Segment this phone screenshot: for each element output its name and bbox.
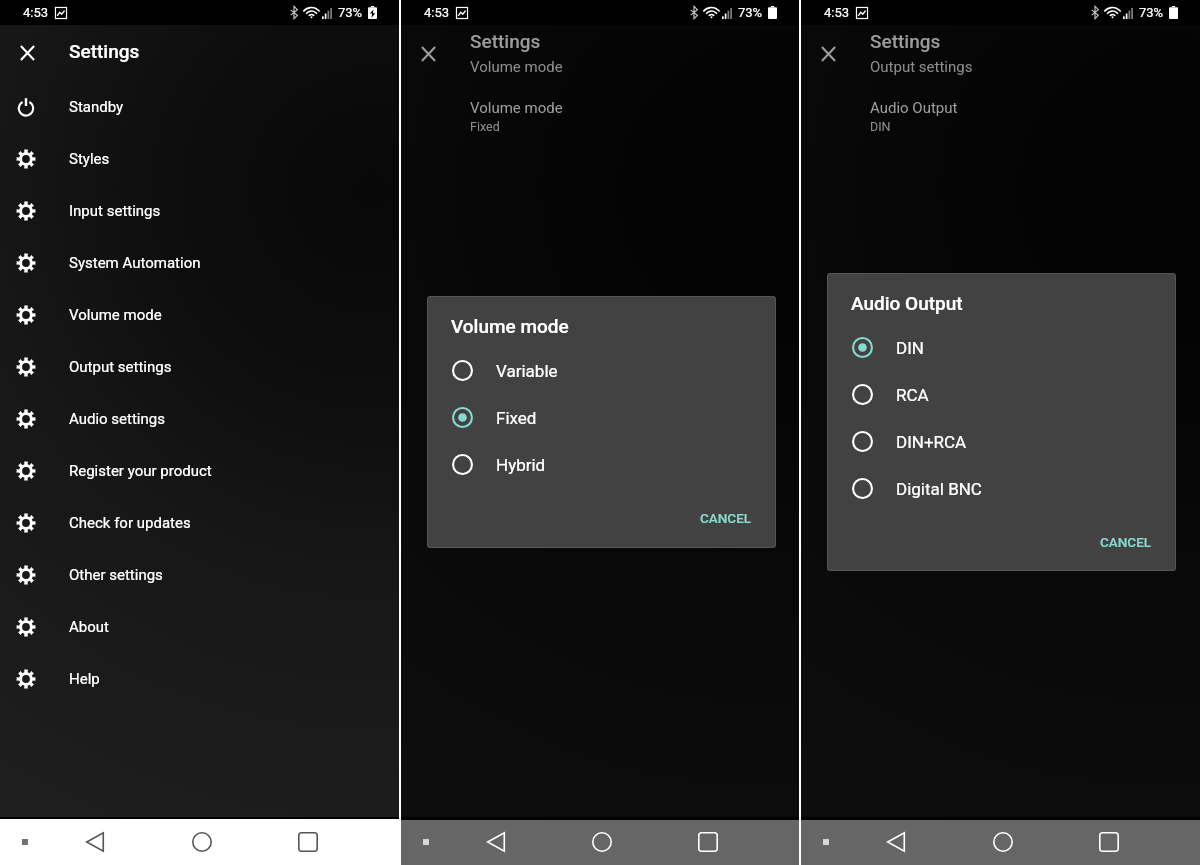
button[interactable]: Other settings bbox=[0, 549, 399, 601]
button[interactable]: Check for updates bbox=[0, 497, 399, 549]
staticText: Fixed bbox=[470, 119, 500, 134]
staticText: Output settings bbox=[69, 358, 172, 376]
button[interactable]: Variable bbox=[427, 347, 776, 394]
button[interactable]: DIN bbox=[827, 324, 1176, 371]
staticText: Settings bbox=[69, 40, 140, 62]
staticText: Variable bbox=[496, 361, 558, 381]
staticText: Digital BNC bbox=[896, 479, 982, 499]
button[interactable]: Home bbox=[578, 819, 626, 864]
button[interactable]: Back bbox=[472, 819, 520, 864]
staticText: Fixed bbox=[496, 408, 537, 428]
staticText: Audio Output bbox=[851, 292, 963, 314]
staticText: Output settings bbox=[870, 58, 973, 76]
button[interactable]: Standby bbox=[0, 81, 399, 133]
staticText: Other settings bbox=[69, 566, 163, 584]
button[interactable]: Recent apps bbox=[284, 819, 332, 865]
staticText: 73% bbox=[1139, 5, 1164, 20]
staticText: 73% bbox=[338, 5, 363, 20]
button[interactable]: Hybrid bbox=[427, 441, 776, 488]
button[interactable]: CANCEL bbox=[690, 500, 762, 536]
staticText: 73% bbox=[738, 5, 763, 20]
button[interactable]: Fixed bbox=[427, 394, 776, 441]
staticText: System Automation bbox=[69, 254, 201, 272]
button[interactable]: Audio settings bbox=[0, 393, 399, 445]
staticText: Standby bbox=[69, 98, 124, 116]
staticText: 4:53 bbox=[424, 5, 450, 20]
staticText: Help bbox=[69, 670, 100, 688]
staticText: Input settings bbox=[69, 202, 161, 220]
staticText: Check for updates bbox=[69, 514, 191, 532]
staticText: Styles bbox=[69, 150, 110, 168]
button[interactable]: Input settings bbox=[0, 185, 399, 237]
staticText: Volume mode bbox=[69, 306, 162, 324]
staticText: Audio settings bbox=[69, 410, 165, 428]
button[interactable]: Recent apps bbox=[1085, 819, 1133, 864]
staticText: Audio Output bbox=[870, 99, 958, 117]
button[interactable]: Close bbox=[806, 32, 850, 76]
staticText: Settings bbox=[870, 30, 941, 52]
button[interactable]: Audio Output bbox=[801, 99, 1200, 143]
button[interactable]: Help bbox=[0, 653, 399, 705]
button[interactable]: Back bbox=[71, 819, 119, 865]
button[interactable]: Digital BNC bbox=[827, 465, 1176, 512]
staticText: Settings bbox=[470, 30, 541, 52]
button[interactable]: Register your product bbox=[0, 445, 399, 497]
button[interactable]: Close bbox=[406, 32, 450, 76]
staticText: DIN bbox=[870, 119, 891, 134]
staticText: DIN+RCA bbox=[896, 432, 967, 452]
staticText: 4:53 bbox=[23, 5, 49, 20]
staticText: Volume mode bbox=[451, 315, 569, 337]
button[interactable]: Home bbox=[979, 819, 1027, 864]
staticText: CANCEL bbox=[700, 510, 752, 526]
button[interactable]: Styles bbox=[0, 133, 399, 185]
button[interactable]: Volume mode bbox=[0, 289, 399, 341]
staticText: About bbox=[69, 618, 109, 636]
button[interactable]: Recent apps bbox=[684, 819, 732, 864]
button[interactable]: RCA bbox=[827, 371, 1176, 418]
staticText: Volume mode bbox=[470, 99, 563, 117]
button[interactable]: Home bbox=[178, 819, 226, 865]
button[interactable]: About bbox=[0, 601, 399, 653]
staticText: 4:53 bbox=[824, 5, 850, 20]
staticText: Register your product bbox=[69, 462, 212, 480]
staticText: Hybrid bbox=[496, 455, 546, 475]
staticText: DIN bbox=[896, 338, 924, 358]
button[interactable]: CANCEL bbox=[1090, 524, 1162, 560]
button[interactable]: Back bbox=[872, 819, 920, 864]
button[interactable]: Volume mode bbox=[401, 99, 799, 143]
staticText: RCA bbox=[896, 385, 929, 405]
staticText: CANCEL bbox=[1100, 534, 1152, 550]
button[interactable]: Close bbox=[5, 31, 49, 75]
staticText: Volume mode bbox=[470, 58, 563, 76]
button[interactable]: DIN+RCA bbox=[827, 418, 1176, 465]
button[interactable]: System Automation bbox=[0, 237, 399, 289]
button[interactable]: Output settings bbox=[0, 341, 399, 393]
